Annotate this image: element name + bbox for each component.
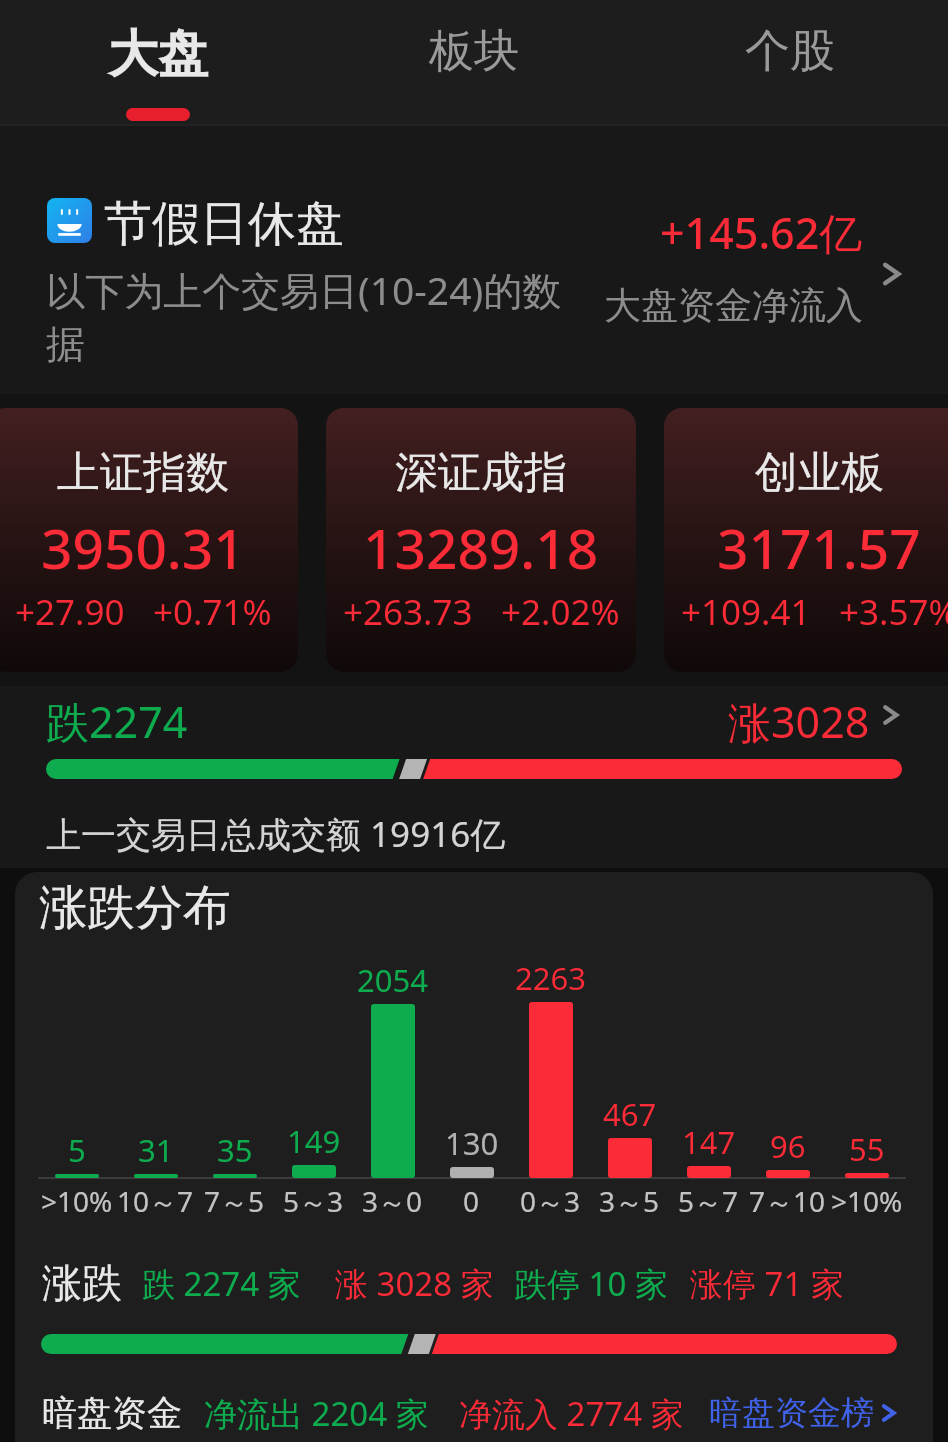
staticText: 3～0	[362, 1182, 423, 1220]
staticText: 7～5	[204, 1182, 265, 1220]
staticText: >10%	[831, 1182, 903, 1220]
staticText: +3.57%	[839, 588, 948, 636]
staticText: 跌2274	[46, 692, 188, 751]
staticText: +2.02%	[501, 588, 620, 636]
staticText: 149	[287, 1120, 341, 1162]
other: 涨跌详情	[874, 698, 908, 732]
staticText: 2263	[515, 957, 586, 999]
staticText: 涨跌	[42, 1258, 122, 1308]
staticText: 35	[217, 1129, 253, 1171]
staticText: 涨3028	[728, 692, 870, 751]
staticText: 净流出 2204 家	[204, 1391, 429, 1436]
staticText: 上一交易日总成交额 19916亿	[46, 810, 506, 858]
staticText: 0～3	[520, 1182, 581, 1220]
staticText: 暗盘资金榜	[709, 1392, 874, 1434]
button[interactable]: 上证指数	[0, 408, 298, 672]
button[interactable]: 个股	[632, 0, 948, 124]
staticText: 0	[463, 1182, 480, 1220]
staticText: 147	[682, 1121, 736, 1163]
staticText: +109.41	[681, 588, 811, 636]
button[interactable]: 大盘	[0, 0, 316, 124]
staticText: 深证成指	[395, 446, 567, 500]
staticText: 3～5	[599, 1182, 660, 1220]
button[interactable]: 节假日休盘	[0, 132, 948, 382]
staticText: 96	[770, 1125, 806, 1167]
staticText: 7～10	[749, 1182, 826, 1220]
button[interactable]: 暗盘资金榜	[709, 1392, 904, 1434]
staticText: 13289.18	[363, 510, 599, 585]
staticText: 个股	[745, 23, 835, 80]
staticText: 130	[445, 1122, 499, 1164]
staticText: 5～3	[283, 1182, 344, 1220]
button[interactable]: 创业板	[664, 408, 948, 672]
staticText: 以下为上个交易日(10-24)的数据	[46, 263, 581, 369]
staticText: 暗盘资金	[42, 1391, 182, 1435]
staticText: >10%	[41, 1182, 113, 1220]
staticText: 2054	[357, 959, 428, 1001]
button[interactable]: 深证成指	[326, 408, 636, 672]
staticText: 涨 3028 家	[335, 1261, 494, 1306]
staticText: 31	[138, 1129, 174, 1171]
staticText: 跌停 10 家	[514, 1261, 668, 1306]
staticText: 创业板	[755, 446, 884, 500]
staticText: 5	[68, 1129, 86, 1171]
staticText: 跌 2274 家	[142, 1261, 301, 1306]
button[interactable]: 跌2274	[0, 684, 948, 864]
staticText: +27.90	[15, 588, 125, 636]
staticText: 涨跌分布	[39, 878, 231, 938]
staticText: 467	[603, 1093, 657, 1135]
button[interactable]: 板块	[316, 0, 632, 124]
staticText: 3171.57	[717, 510, 921, 585]
staticText: 大盘资金净流入	[604, 282, 863, 329]
staticText: +263.73	[343, 588, 473, 636]
staticText: +145.62亿	[660, 203, 863, 262]
staticText: 板块	[429, 23, 519, 80]
staticText: 大盘	[108, 23, 208, 86]
staticText: 上证指数	[57, 446, 229, 500]
staticText: 55	[849, 1128, 885, 1170]
staticText: 10～7	[117, 1182, 194, 1220]
staticText: +0.71%	[153, 588, 272, 636]
staticText: 3950.31	[41, 510, 245, 585]
staticText: 涨停 71 家	[690, 1261, 844, 1306]
other: 大盘资金净流入详情	[872, 254, 912, 294]
staticText: 节假日休盘	[104, 194, 344, 254]
staticText: 5～7	[678, 1182, 739, 1220]
staticText: 净流入 2774 家	[459, 1391, 684, 1436]
